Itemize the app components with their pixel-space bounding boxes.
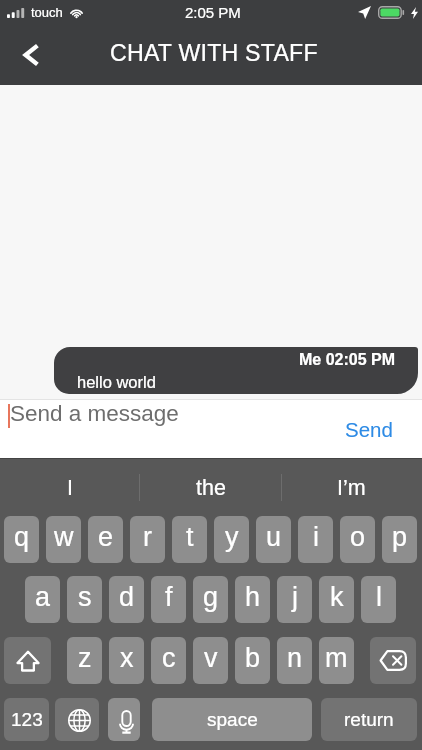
staticText: CHAT WITH STAFF [110, 40, 318, 66]
button[interactable]: s [67, 576, 102, 623]
staticText: a [35, 582, 51, 612]
staticText: d [119, 582, 135, 612]
staticText: n [287, 643, 303, 673]
button[interactable]: n [277, 637, 312, 684]
button[interactable]: the [140, 459, 281, 516]
staticText: w [54, 522, 74, 552]
button[interactable]: h [235, 576, 270, 623]
staticText: I’m [337, 476, 366, 500]
button[interactable]: m [319, 637, 354, 684]
staticText: f [165, 582, 173, 612]
staticText: q [14, 522, 30, 552]
button[interactable]: u [256, 516, 291, 563]
button[interactable]: i [298, 516, 333, 563]
button[interactable]: r [130, 516, 165, 563]
button[interactable]: w [46, 516, 81, 563]
button[interactable]: e [88, 516, 123, 563]
staticText: Send a message [10, 401, 179, 426]
button[interactable]: Dictate [108, 698, 140, 741]
staticText: h [245, 582, 261, 612]
staticText: hello world [77, 373, 156, 391]
staticText: k [330, 582, 344, 612]
staticText: b [245, 643, 261, 673]
button[interactable]: x [109, 637, 144, 684]
button[interactable]: space [152, 698, 312, 741]
button[interactable]: o [340, 516, 375, 563]
staticText: p [392, 522, 408, 552]
staticText: 2:05 PM [185, 4, 241, 21]
staticText: z [78, 643, 92, 673]
button[interactable]: d [109, 576, 144, 623]
button[interactable]: j [277, 576, 312, 623]
staticText: Send [345, 418, 393, 441]
staticText: l [376, 582, 382, 612]
staticText: t [186, 522, 194, 552]
button[interactable]: Me 02:05 PM [54, 347, 418, 394]
staticText: m [325, 643, 348, 673]
button[interactable]: a [25, 576, 60, 623]
button[interactable]: I’m [281, 459, 422, 516]
button[interactable]: c [151, 637, 186, 684]
button[interactable]: 123 [4, 698, 49, 741]
staticText: 123 [11, 709, 43, 730]
staticText: u [266, 522, 282, 552]
button[interactable]: I [0, 459, 140, 516]
button[interactable]: t [172, 516, 207, 563]
staticText: r [143, 522, 152, 552]
staticText: g [203, 582, 219, 612]
button[interactable]: f [151, 576, 186, 623]
staticText: the [196, 476, 226, 500]
button[interactable]: b [235, 637, 270, 684]
staticText: touch [31, 5, 63, 20]
button[interactable]: Send a message [0, 400, 422, 438]
button[interactable]: Backspace [370, 637, 416, 684]
staticText: Me 02:05 PM [299, 351, 396, 369]
staticText: s [78, 582, 92, 612]
button[interactable]: p [382, 516, 417, 563]
staticText: j [292, 582, 298, 612]
button[interactable]: q [4, 516, 39, 563]
button[interactable]: y [214, 516, 249, 563]
button[interactable]: Shift [4, 637, 51, 684]
staticText: I [67, 476, 73, 500]
button[interactable]: z [67, 637, 102, 684]
button[interactable]: Back [0, 28, 56, 85]
staticText: c [162, 643, 176, 673]
staticText: space [207, 709, 258, 730]
staticText: i [313, 522, 319, 552]
staticText: e [98, 522, 114, 552]
staticText: o [350, 522, 366, 552]
staticText: x [120, 643, 134, 673]
button[interactable]: g [193, 576, 228, 623]
button[interactable]: return [321, 698, 417, 741]
button[interactable]: k [319, 576, 354, 623]
button[interactable]: Switch keyboard [55, 698, 99, 741]
button[interactable]: Send [323, 406, 422, 453]
button[interactable]: v [193, 637, 228, 684]
staticText: y [225, 522, 239, 552]
button[interactable]: l [361, 576, 396, 623]
staticText: return [344, 709, 394, 730]
staticText: v [204, 643, 218, 673]
